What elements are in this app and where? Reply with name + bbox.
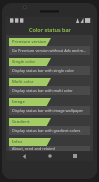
staticText: Gradient: [12, 119, 30, 125]
button[interactable]: Single color: [9, 58, 90, 75]
button[interactable]: Image: [9, 98, 90, 115]
staticText: Single color: [12, 59, 36, 65]
staticText: Infos: [12, 139, 23, 145]
staticText: Premium version: [12, 39, 47, 45]
button[interactable]: Multi color: [9, 78, 90, 95]
staticText: Display status bar with multi color: [12, 88, 73, 93]
staticText: Color status bar: [29, 26, 71, 33]
staticText: Image: [12, 99, 25, 105]
staticText: Display status bar with single color: [12, 68, 75, 73]
staticText: Display status bar with gradient colors: [12, 128, 81, 133]
button[interactable]: Home: [43, 151, 57, 161]
staticText: About, send and related: [12, 146, 55, 151]
button[interactable]: Color status bar: [6, 24, 93, 35]
button[interactable]: Infos: [9, 138, 90, 151]
staticText: Multi color: [12, 79, 34, 85]
button[interactable]: Premium version: [9, 38, 90, 55]
button[interactable]: Gradient: [9, 118, 90, 135]
button[interactable]: Back: [17, 151, 31, 161]
staticText: Go Premium version without Ads and more …: [12, 48, 87, 53]
staticText: Display status bar with image wallpaper: [12, 108, 84, 113]
button[interactable]: Recent apps: [68, 151, 82, 161]
